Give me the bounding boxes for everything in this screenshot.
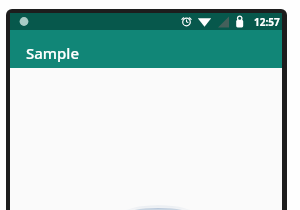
staticText: 12:57 <box>254 15 280 29</box>
staticText: Sample <box>26 43 79 63</box>
button[interactable]: Sample <box>10 30 282 68</box>
